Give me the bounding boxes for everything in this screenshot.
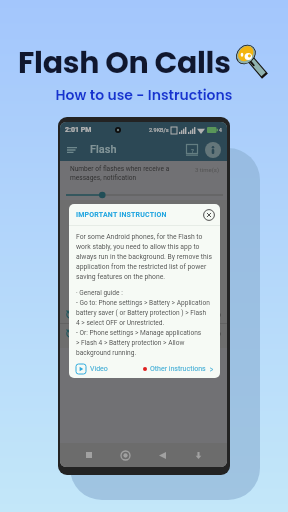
staticText: Other cool features:: [70, 354, 128, 362]
staticText: · General guide : - Go to: Phone setting…: [76, 289, 210, 356]
staticText: Flash: [90, 143, 117, 156]
staticText: 2.9KB/s: [149, 127, 169, 133]
button[interactable]: Home: [117, 447, 133, 463]
button[interactable]: Info: [205, 142, 221, 158]
staticText: 23:00: [206, 311, 221, 318]
button[interactable]: Other cool features:: [60, 348, 227, 443]
staticText: From: [82, 310, 98, 318]
button[interactable]: Number of flashes when receive a message…: [60, 161, 227, 200]
staticText: IMPORTANT INSTRUCTION: [76, 211, 167, 219]
staticText: How to use - Instructions: [0, 85, 288, 105]
button[interactable]: Other instructions: [143, 365, 214, 373]
button[interactable]: To: [60, 324, 227, 342]
button[interactable]: Close: [203, 209, 215, 221]
staticText: 06:00: [206, 330, 221, 337]
button[interactable]: Back: [154, 447, 170, 463]
staticText: For some Android phones, for the Flash t…: [76, 233, 214, 280]
button[interactable]: Help: [186, 144, 198, 156]
staticText: Other instructions: [150, 365, 206, 373]
staticText: Video: [90, 365, 108, 373]
button[interactable]: Video: [76, 364, 108, 374]
staticText: Number of flashes when receive a message…: [70, 165, 170, 182]
staticText: 2:01 PM: [65, 126, 92, 134]
staticText: 4: [219, 127, 222, 133]
staticText: 3 time(s): [195, 166, 219, 173]
button[interactable]: From: [60, 305, 227, 323]
button[interactable]: Menu: [66, 144, 78, 156]
staticText: To: [82, 329, 90, 337]
staticText: Flash On Calls: [18, 42, 231, 84]
button[interactable]: Recent apps: [81, 447, 97, 463]
button[interactable]: Hide keyboard: [190, 447, 206, 463]
staticText: ?: [191, 147, 194, 154]
